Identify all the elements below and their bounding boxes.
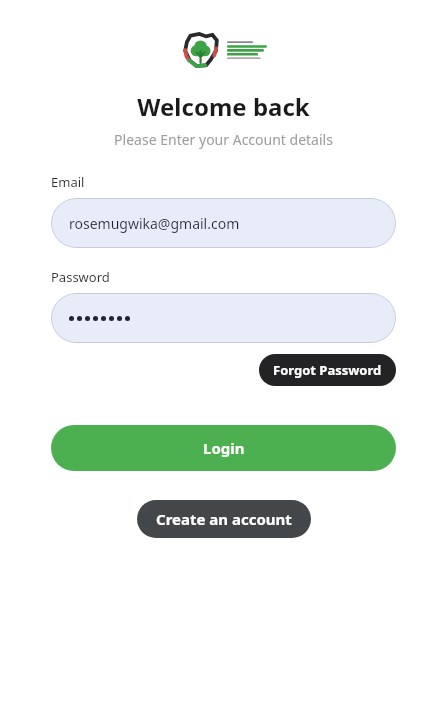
staticText: Please Enter your Account details — [114, 130, 333, 149]
staticText: Create an account — [156, 509, 292, 529]
other: Mazingira Awards logo — [179, 30, 223, 70]
button[interactable]: rosemugwika@gmail.com — [51, 198, 396, 248]
button[interactable]: Login — [51, 425, 396, 471]
staticText: Email — [51, 173, 85, 191]
button[interactable] — [51, 293, 396, 343]
staticText: Password — [51, 268, 110, 286]
button[interactable]: Forgot Password — [259, 354, 396, 386]
staticText: Welcome back — [137, 90, 310, 123]
button[interactable]: Create an account — [137, 500, 311, 538]
staticText: Login — [203, 438, 245, 458]
staticText: Forgot Password — [273, 361, 382, 379]
staticText: rosemugwika@gmail.com — [69, 214, 240, 233]
